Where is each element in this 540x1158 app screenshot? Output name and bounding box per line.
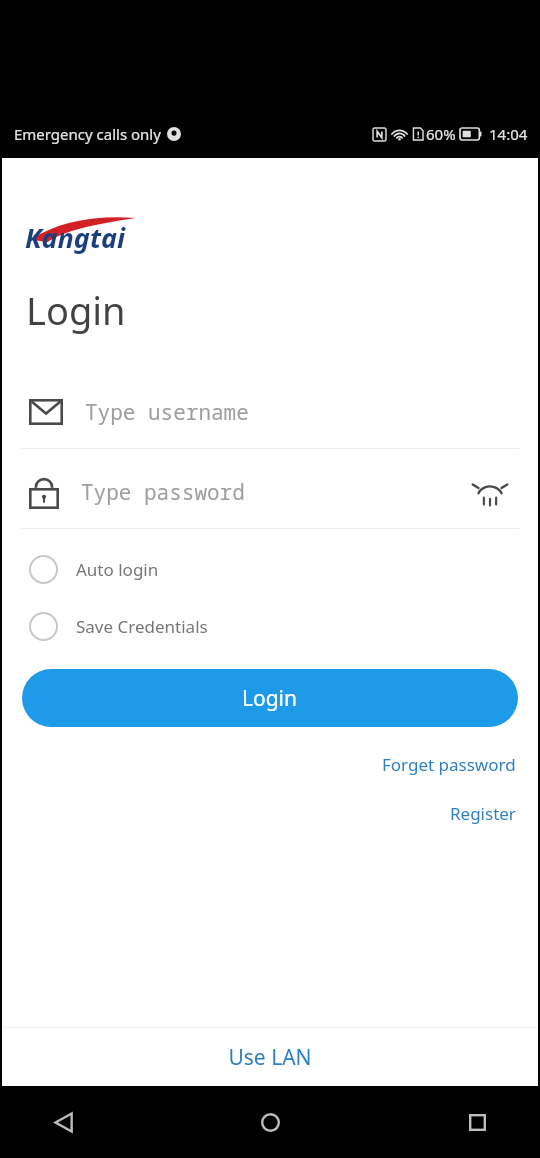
button[interactable]: Home [241,1093,299,1151]
button[interactable]: Recent apps [448,1093,506,1151]
staticText: Use LAN [228,1043,312,1072]
button[interactable]: Show password [467,469,513,515]
button[interactable]: Type username [21,376,519,449]
staticText: 14:04 [489,124,528,144]
button[interactable]: Auto login [2,549,538,590]
button[interactable]: Register [428,794,538,833]
button[interactable]: Forget password [360,745,538,784]
staticText: Save Credentials [76,615,208,638]
staticText: 60% [426,124,456,144]
button[interactable]: Save Credentials [2,606,538,647]
staticText: Auto login [76,558,159,581]
staticText: Register [450,802,516,825]
staticText: Type password [81,478,245,507]
button[interactable]: Back [34,1093,92,1151]
staticText: Type username [85,398,249,427]
staticText: Kangtai [25,219,126,256]
staticText: Forget password [382,753,516,776]
button[interactable]: Login [22,669,518,727]
staticText: Login [26,284,126,336]
staticText: Login [242,684,298,713]
button[interactable]: Type password [21,456,519,529]
staticText: Emergency calls only [14,124,161,144]
button[interactable]: Use LAN [2,1028,538,1086]
